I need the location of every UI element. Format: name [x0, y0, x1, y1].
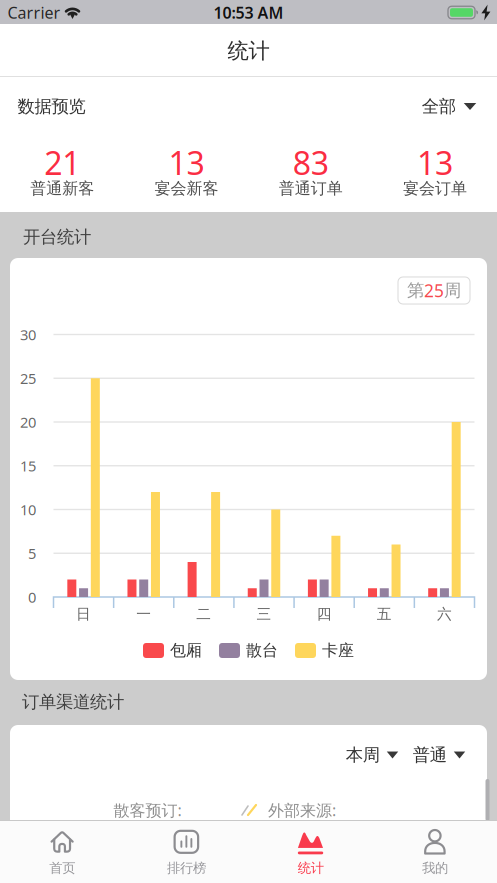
- staticText: 一: [136, 605, 151, 623]
- staticText: 六: [437, 605, 452, 623]
- staticText: 15: [20, 456, 36, 475]
- staticText: 四: [317, 605, 332, 623]
- staticText: 数据预览: [17, 96, 85, 117]
- staticText: 首页: [49, 860, 75, 876]
- staticText: 二: [196, 605, 211, 623]
- staticText: 第: [407, 280, 424, 301]
- button[interactable]: 普通: [413, 744, 465, 766]
- button[interactable]: 排行榜: [124, 820, 248, 883]
- staticText: 统计: [227, 38, 269, 64]
- staticText: Carrier: [7, 2, 60, 23]
- button[interactable]: 首页: [0, 820, 124, 883]
- staticText: 宴会订单: [403, 179, 467, 198]
- staticText: 5: [28, 543, 36, 563]
- staticText: 普通新客: [30, 179, 94, 198]
- button[interactable]: 我的: [373, 820, 497, 883]
- staticText: 统计: [298, 860, 324, 876]
- staticText: 全部: [422, 96, 456, 117]
- staticText: 20: [20, 412, 36, 432]
- button[interactable]: 第: [398, 277, 470, 304]
- staticText: 21: [44, 141, 80, 184]
- staticText: 本周: [346, 744, 380, 766]
- staticText: 10:53 AM: [213, 2, 283, 23]
- staticText: 普通订单: [279, 179, 343, 198]
- staticText: 外部来源:: [268, 799, 336, 821]
- staticText: 卡座: [322, 641, 354, 660]
- staticText: 普通: [413, 744, 447, 766]
- staticText: 13: [168, 141, 204, 184]
- staticText: 0: [28, 587, 36, 607]
- staticText: 25: [424, 279, 444, 302]
- staticText: 开台统计: [23, 226, 91, 248]
- button[interactable]: 全部: [422, 96, 476, 117]
- staticText: 日: [76, 605, 91, 623]
- staticText: 周: [444, 280, 461, 301]
- staticText: 包厢: [170, 641, 202, 660]
- staticText: 30: [20, 325, 36, 344]
- staticText: 83: [293, 141, 329, 184]
- staticText: 10: [20, 500, 36, 519]
- staticText: 宴会新客: [154, 179, 218, 198]
- staticText: 三: [256, 605, 271, 623]
- button[interactable]: 统计: [248, 820, 373, 883]
- staticText: 排行榜: [167, 860, 206, 876]
- staticText: 散客预订:: [113, 799, 181, 821]
- button[interactable]: 本周: [346, 744, 398, 766]
- staticText: 五: [377, 605, 392, 623]
- staticText: 我的: [422, 860, 448, 876]
- staticText: 25: [20, 368, 36, 388]
- staticText: 13: [417, 141, 453, 184]
- staticText: 订单渠道统计: [22, 691, 124, 713]
- staticText: 散台: [246, 641, 278, 660]
